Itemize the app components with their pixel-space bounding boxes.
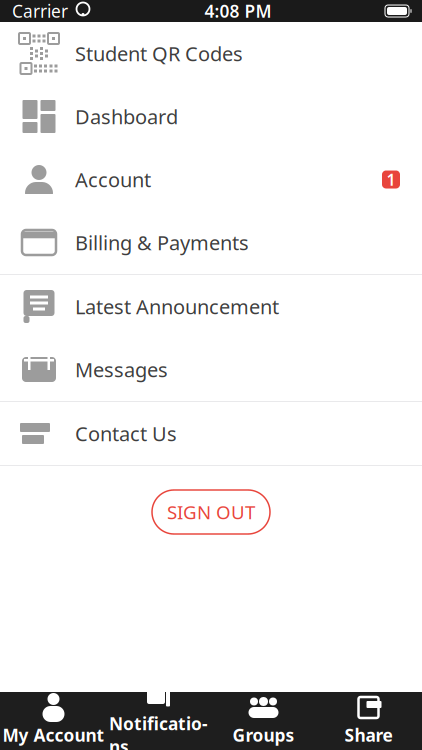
- staticText: Groups: [232, 723, 294, 746]
- staticText: Dashboard: [75, 103, 178, 130]
- staticText: SIGN OUT: [167, 500, 255, 524]
- staticText: Latest Announcement: [75, 293, 279, 320]
- button[interactable]: My Account: [1, 692, 106, 750]
- button[interactable]: Student QR Codes: [0, 22, 422, 85]
- staticText: Carrier: [12, 0, 68, 22]
- button[interactable]: Share: [316, 692, 421, 750]
- staticText: Messages: [75, 356, 168, 383]
- button[interactable]: [0, 338, 422, 401]
- staticText: Billing & Payments: [75, 229, 249, 256]
- staticText: Contact Us: [75, 420, 177, 447]
- button[interactable]: Contact Us: [0, 402, 422, 465]
- staticText: 4:08 PM: [204, 0, 271, 22]
- button[interactable]: SIGN OUT: [152, 490, 270, 534]
- staticText: Notifications: [109, 712, 208, 750]
- button[interactable]: Account: [0, 148, 422, 211]
- staticText: Share: [344, 723, 392, 746]
- staticText: My Account: [2, 723, 104, 746]
- staticText: Account: [75, 166, 151, 193]
- button[interactable]: Billing & Payments: [0, 211, 422, 274]
- button[interactable]: Latest Announcement: [0, 275, 422, 338]
- button[interactable]: Groups: [211, 692, 316, 750]
- button[interactable]: Notifications: [106, 692, 211, 750]
- staticText: Student QR Codes: [75, 40, 243, 67]
- button[interactable]: Dashboard: [0, 85, 422, 148]
- staticText: 1: [386, 169, 395, 190]
